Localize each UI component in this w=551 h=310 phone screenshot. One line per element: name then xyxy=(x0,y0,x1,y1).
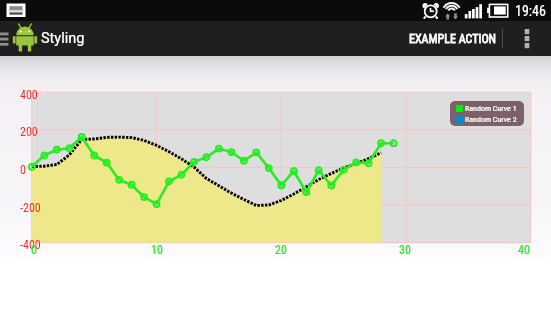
staticText: 0 xyxy=(31,243,37,257)
staticText: -400 xyxy=(20,238,41,252)
staticText: 200 xyxy=(20,125,38,139)
staticText: 20 xyxy=(275,243,287,257)
staticText: -200 xyxy=(20,201,41,215)
staticText: EXAMPLE ACTION xyxy=(409,32,497,46)
staticText: 0 xyxy=(20,163,26,177)
button[interactable]: More options xyxy=(513,21,541,56)
staticText: Random Curve 2 xyxy=(465,115,517,124)
staticText: 40 xyxy=(518,243,530,257)
staticText: Random Curve 1 xyxy=(465,104,517,113)
staticText: Styling xyxy=(41,30,85,47)
button[interactable]: Navigate up xyxy=(0,21,41,56)
button[interactable]: EXAMPLE ACTION xyxy=(402,21,503,56)
staticText: 10 xyxy=(151,243,163,257)
staticText: 19:46 xyxy=(515,3,546,19)
staticText: 30 xyxy=(399,243,411,257)
staticText: 400 xyxy=(20,88,38,102)
